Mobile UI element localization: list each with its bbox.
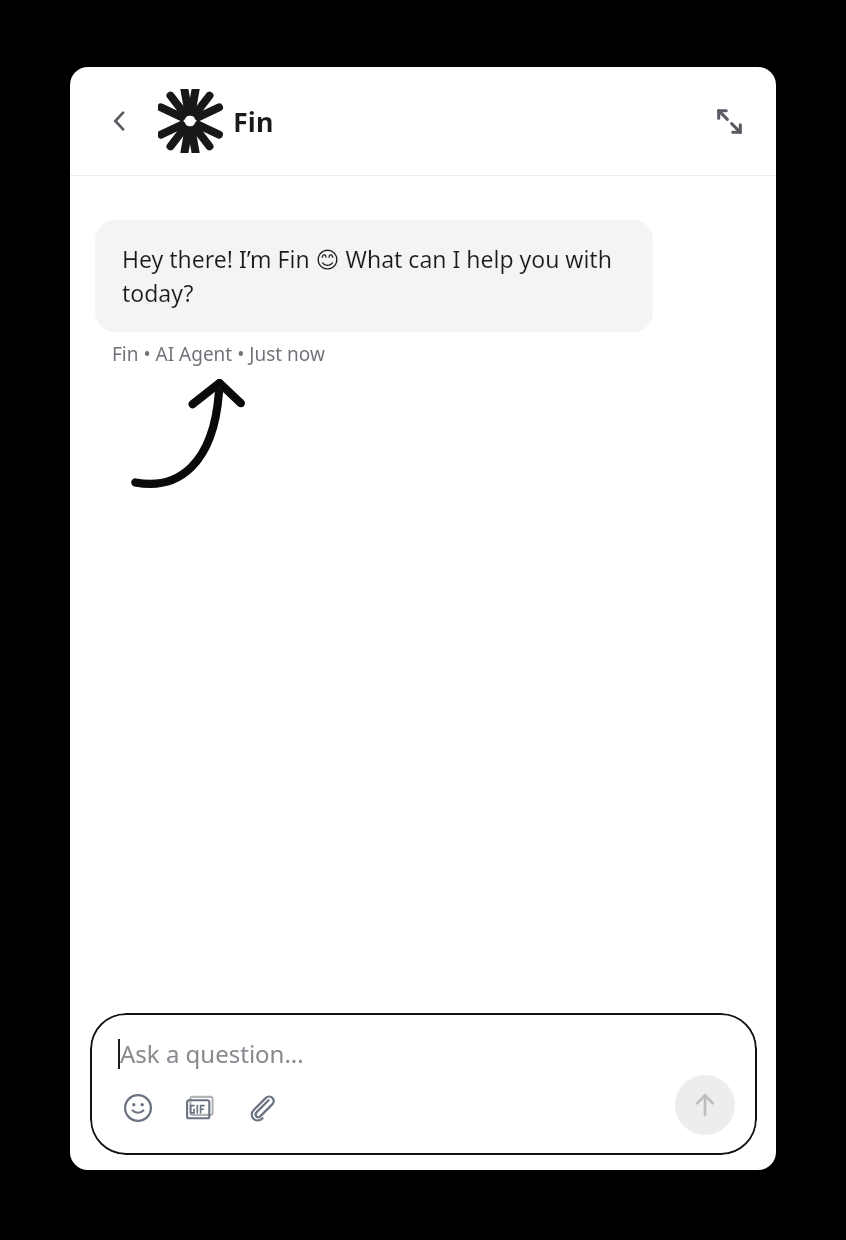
button[interactable]: Expand [706,98,752,144]
button[interactable]: Send [675,1075,735,1135]
staticText: Hey there! I’m Fin 😊 What can I help you… [122,243,626,309]
button[interactable]: Back [98,99,142,143]
button[interactable]: Insert GIF [180,1088,220,1128]
staticText: Fin [233,103,274,140]
staticText: Fin • AI Agent • Just now [112,341,325,367]
button[interactable]: Ask a question... [90,1013,757,1155]
button[interactable]: Attach file [242,1088,282,1128]
button[interactable]: Insert emoji [118,1088,158,1128]
button[interactable]: Hey there! I’m Fin 😊 What can I help you… [95,220,653,332]
staticText: Ask a question... [120,1037,304,1070]
button[interactable]: Fin [158,89,274,153]
